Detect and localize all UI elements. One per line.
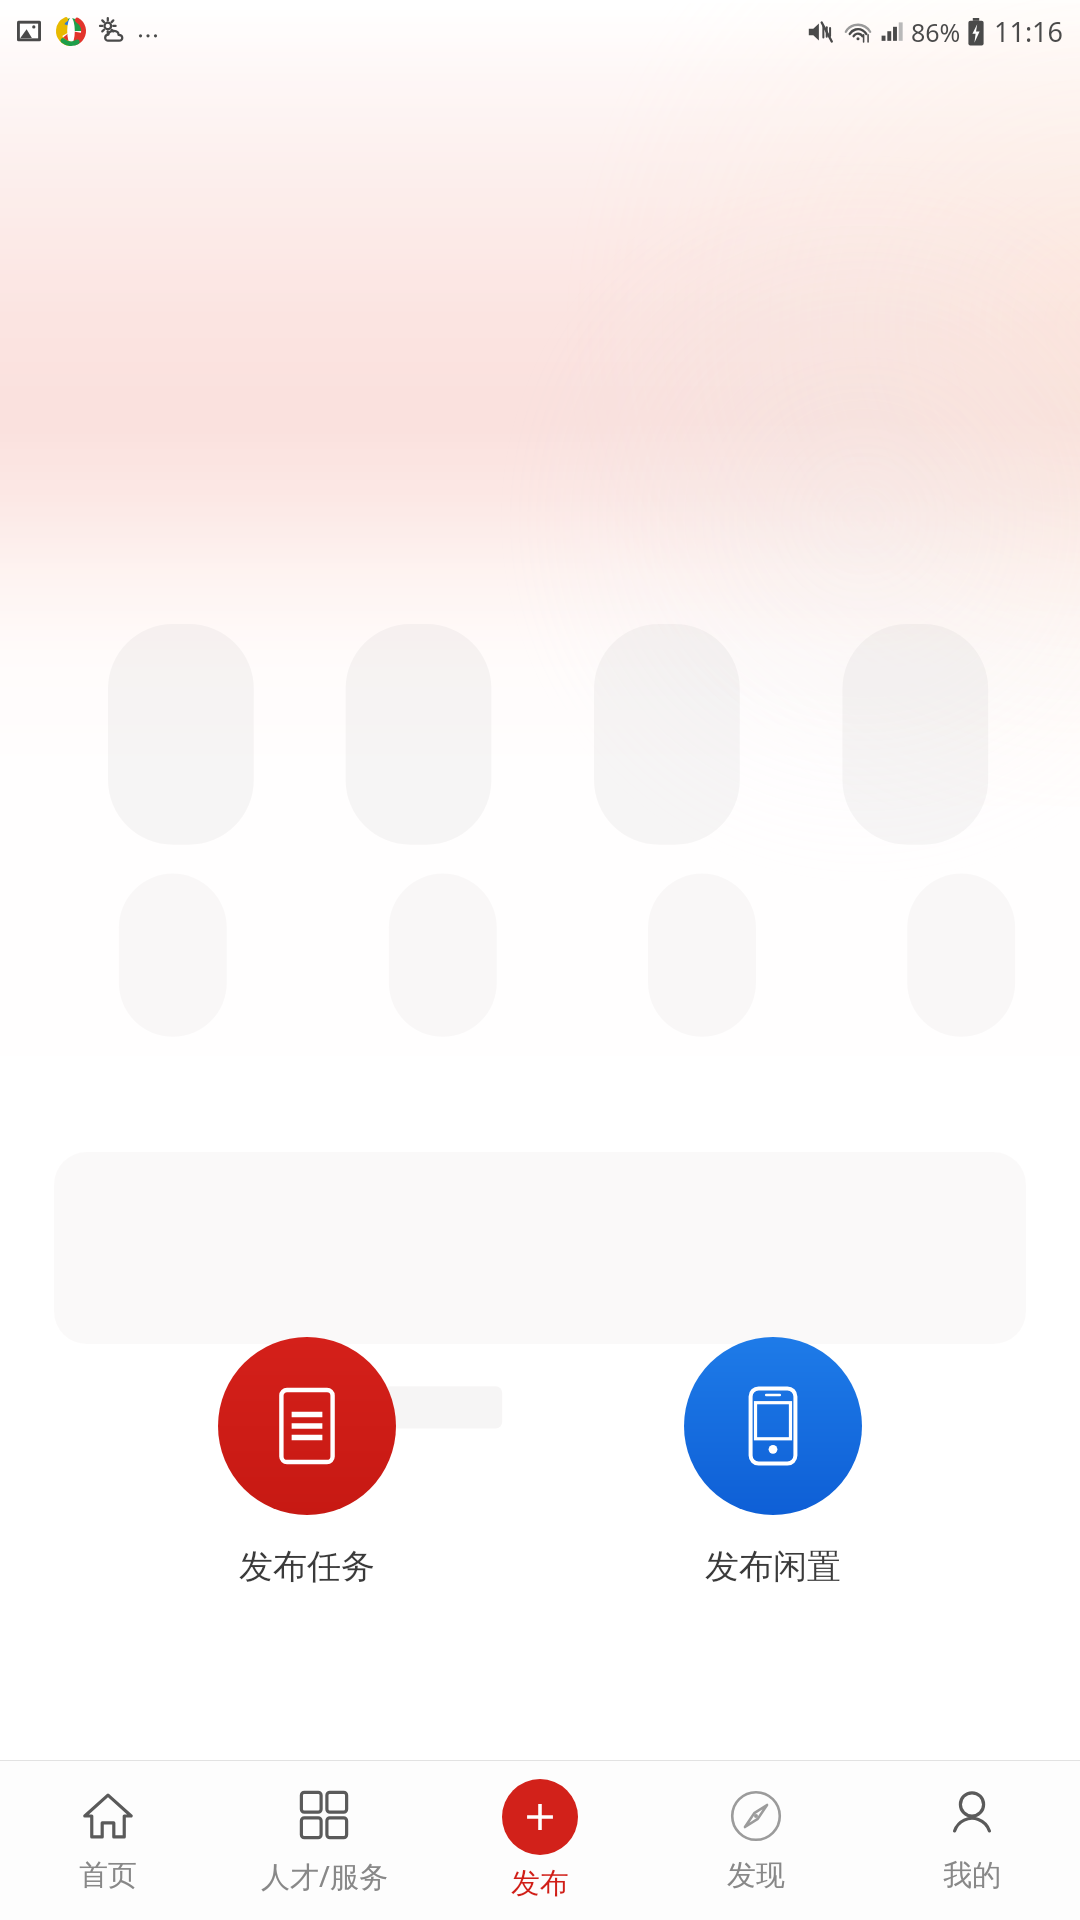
staticText: 人才/服务 — [261, 1856, 388, 1896]
button[interactable]: 发布 — [432, 1761, 648, 1920]
staticText: 发布任务 — [239, 1545, 375, 1588]
button[interactable]: 首页 — [0, 1761, 216, 1920]
staticText: 发布 — [511, 1865, 569, 1902]
staticText: 我的 — [943, 1857, 1001, 1894]
staticText: 发布闲置 — [705, 1545, 841, 1588]
button[interactable]: 我的 — [864, 1761, 1080, 1920]
button[interactable]: 人才/服务 — [216, 1761, 432, 1920]
button[interactable]: 发布任务 — [147, 1333, 467, 1592]
staticText: 发现 — [727, 1857, 785, 1894]
staticText: 首页 — [79, 1857, 137, 1894]
staticText: 86% — [911, 15, 961, 49]
button[interactable]: 发布闲置 — [613, 1333, 933, 1592]
button[interactable]: 发现 — [648, 1761, 864, 1920]
staticText: 11:16 — [994, 13, 1064, 50]
